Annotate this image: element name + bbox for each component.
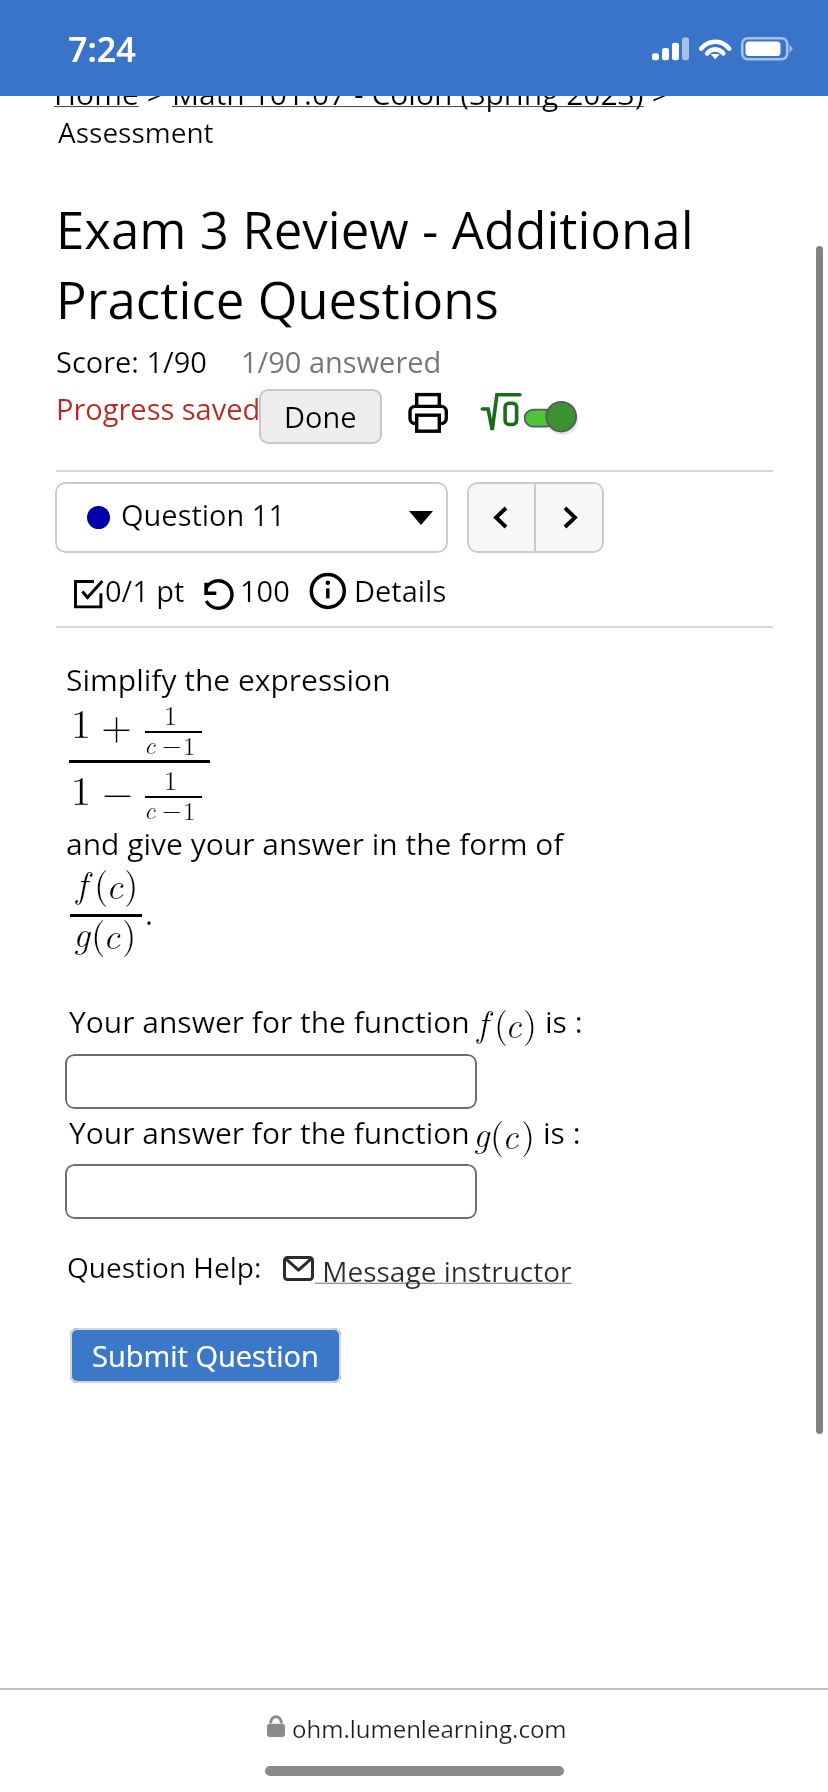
staticText: − xyxy=(102,761,134,818)
staticText: c xyxy=(505,997,522,1048)
staticText: − xyxy=(162,791,182,826)
staticText: Assessment xyxy=(58,113,214,151)
staticText: 1 xyxy=(183,727,196,762)
staticText: g xyxy=(73,905,91,957)
button[interactable] xyxy=(65,1164,477,1219)
button[interactable]: Details xyxy=(308,571,348,611)
staticText: ) xyxy=(521,1107,536,1158)
button[interactable]: Toggle equation editor xyxy=(522,396,584,438)
staticText: > xyxy=(644,73,669,114)
button[interactable] xyxy=(55,482,448,553)
staticText: c xyxy=(103,907,121,959)
staticText: Math 101.07 - Colon (Spring 2023) xyxy=(172,73,644,114)
staticText: is : xyxy=(543,1112,581,1153)
staticText: 1 xyxy=(164,696,178,733)
staticText: Question Help: xyxy=(67,1248,262,1286)
button[interactable]: Previous question xyxy=(467,482,534,553)
staticText: Progress saved xyxy=(56,389,261,428)
staticText: Exam 3 Review - Additional Practice Ques… xyxy=(56,194,694,334)
staticText: − xyxy=(162,726,182,761)
staticText: 1 xyxy=(183,792,196,827)
staticText: ( xyxy=(494,996,509,1047)
staticText: 1 xyxy=(71,760,91,817)
staticText: f xyxy=(477,995,489,1046)
staticText: Message instructor xyxy=(315,1252,572,1290)
staticText: ) xyxy=(523,996,538,1047)
staticText: ) xyxy=(124,856,139,908)
button[interactable]: Message instructor xyxy=(283,1256,314,1282)
staticText: ( xyxy=(94,856,109,908)
staticText: 7:24 xyxy=(68,26,136,72)
button[interactable]: Submit Question xyxy=(70,1328,341,1383)
staticText: Simplify the expression xyxy=(66,659,391,700)
button[interactable]: Message instructor xyxy=(315,1252,572,1290)
button[interactable]: Print xyxy=(409,393,447,432)
staticText: > xyxy=(139,73,172,114)
button[interactable]: Done xyxy=(259,389,382,444)
staticText: 100 xyxy=(240,571,290,610)
staticText: ( xyxy=(490,1107,505,1158)
staticText: Your answer for the function xyxy=(69,1001,478,1042)
staticText: Done xyxy=(284,397,357,436)
staticText: and give your answer in the form of xyxy=(66,823,564,864)
staticText: + xyxy=(101,695,133,752)
staticText: f xyxy=(76,855,88,907)
staticText: ohm.lumenlearning.com xyxy=(292,1712,567,1745)
staticText: c xyxy=(106,857,124,909)
staticText: 1/90 answered xyxy=(241,342,442,381)
staticText: Submit Question xyxy=(92,1336,319,1375)
staticText: ) xyxy=(122,906,137,958)
staticText: 0/1 pt xyxy=(105,571,185,610)
staticText: Details xyxy=(354,571,447,610)
staticText: Score: 1/90 xyxy=(56,342,207,381)
staticText: 1 xyxy=(71,693,91,750)
staticText: Question 11 xyxy=(121,495,286,534)
staticText: c xyxy=(144,791,156,826)
staticText: c xyxy=(502,1108,519,1159)
staticText: Your answer for the function xyxy=(69,1112,478,1153)
button[interactable]: Next question xyxy=(536,482,603,553)
button[interactable] xyxy=(65,1054,477,1109)
staticText: . xyxy=(145,893,153,934)
staticText: g xyxy=(473,1106,490,1157)
staticText: ( xyxy=(91,906,106,958)
staticText: 1 xyxy=(164,761,178,798)
staticText: is : xyxy=(545,1001,583,1042)
staticText: Home xyxy=(54,73,139,114)
staticText: c xyxy=(144,726,156,761)
